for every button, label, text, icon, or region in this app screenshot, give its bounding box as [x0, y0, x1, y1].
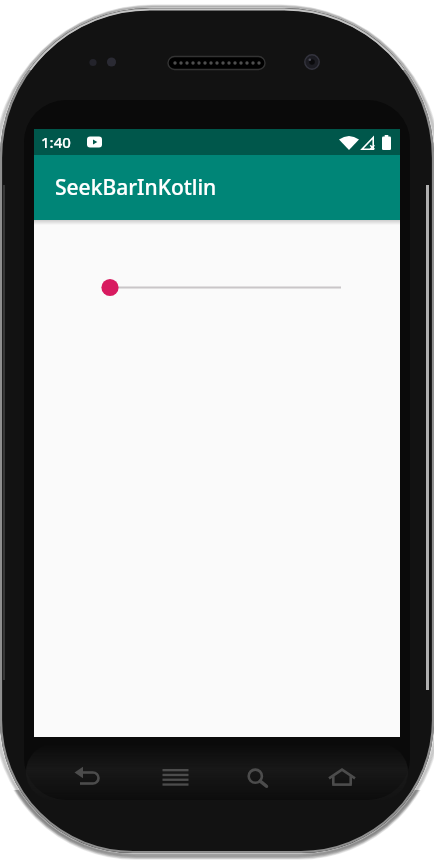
staticText: 1:40 [41, 132, 71, 152]
button[interactable] [303, 755, 390, 801]
staticText: SeekBarInKotlin [55, 173, 217, 202]
button[interactable] [44, 755, 130, 801]
button[interactable] [130, 755, 216, 801]
button[interactable] [216, 755, 303, 801]
button[interactable] [94, 267, 356, 308]
